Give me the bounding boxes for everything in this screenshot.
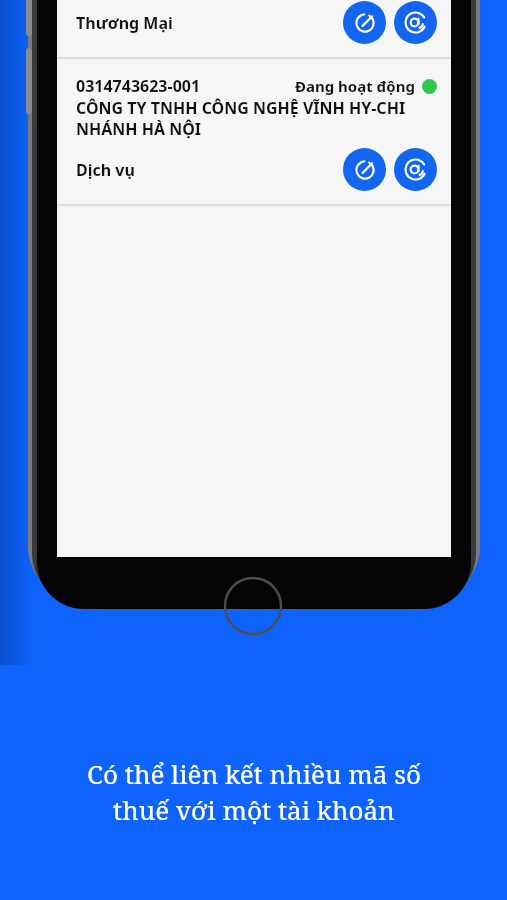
button[interactable]: Home <box>223 576 283 636</box>
staticText: Thương Mại <box>76 12 173 34</box>
staticText: 0314743623-001 <box>76 75 201 97</box>
button[interactable]: Email <box>394 1 437 44</box>
button[interactable]: Edit <box>343 1 386 44</box>
staticText: thuế với một tài khoản <box>113 792 395 827</box>
staticText: Dịch vụ <box>76 159 135 181</box>
button[interactable]: 0314743623-001 <box>57 59 451 204</box>
staticText: Đang hoạt động <box>295 76 415 96</box>
staticText: Có thể liên kết nhiều mã số <box>87 756 421 791</box>
staticText: CÔNG TY TNHH CÔNG NGHỆ VĨNH HY-CHI NHÁNH… <box>76 97 406 140</box>
button[interactable]: Email <box>394 148 437 191</box>
button[interactable]: 0312914567-002 <box>57 0 451 57</box>
button[interactable]: Edit <box>343 148 386 191</box>
